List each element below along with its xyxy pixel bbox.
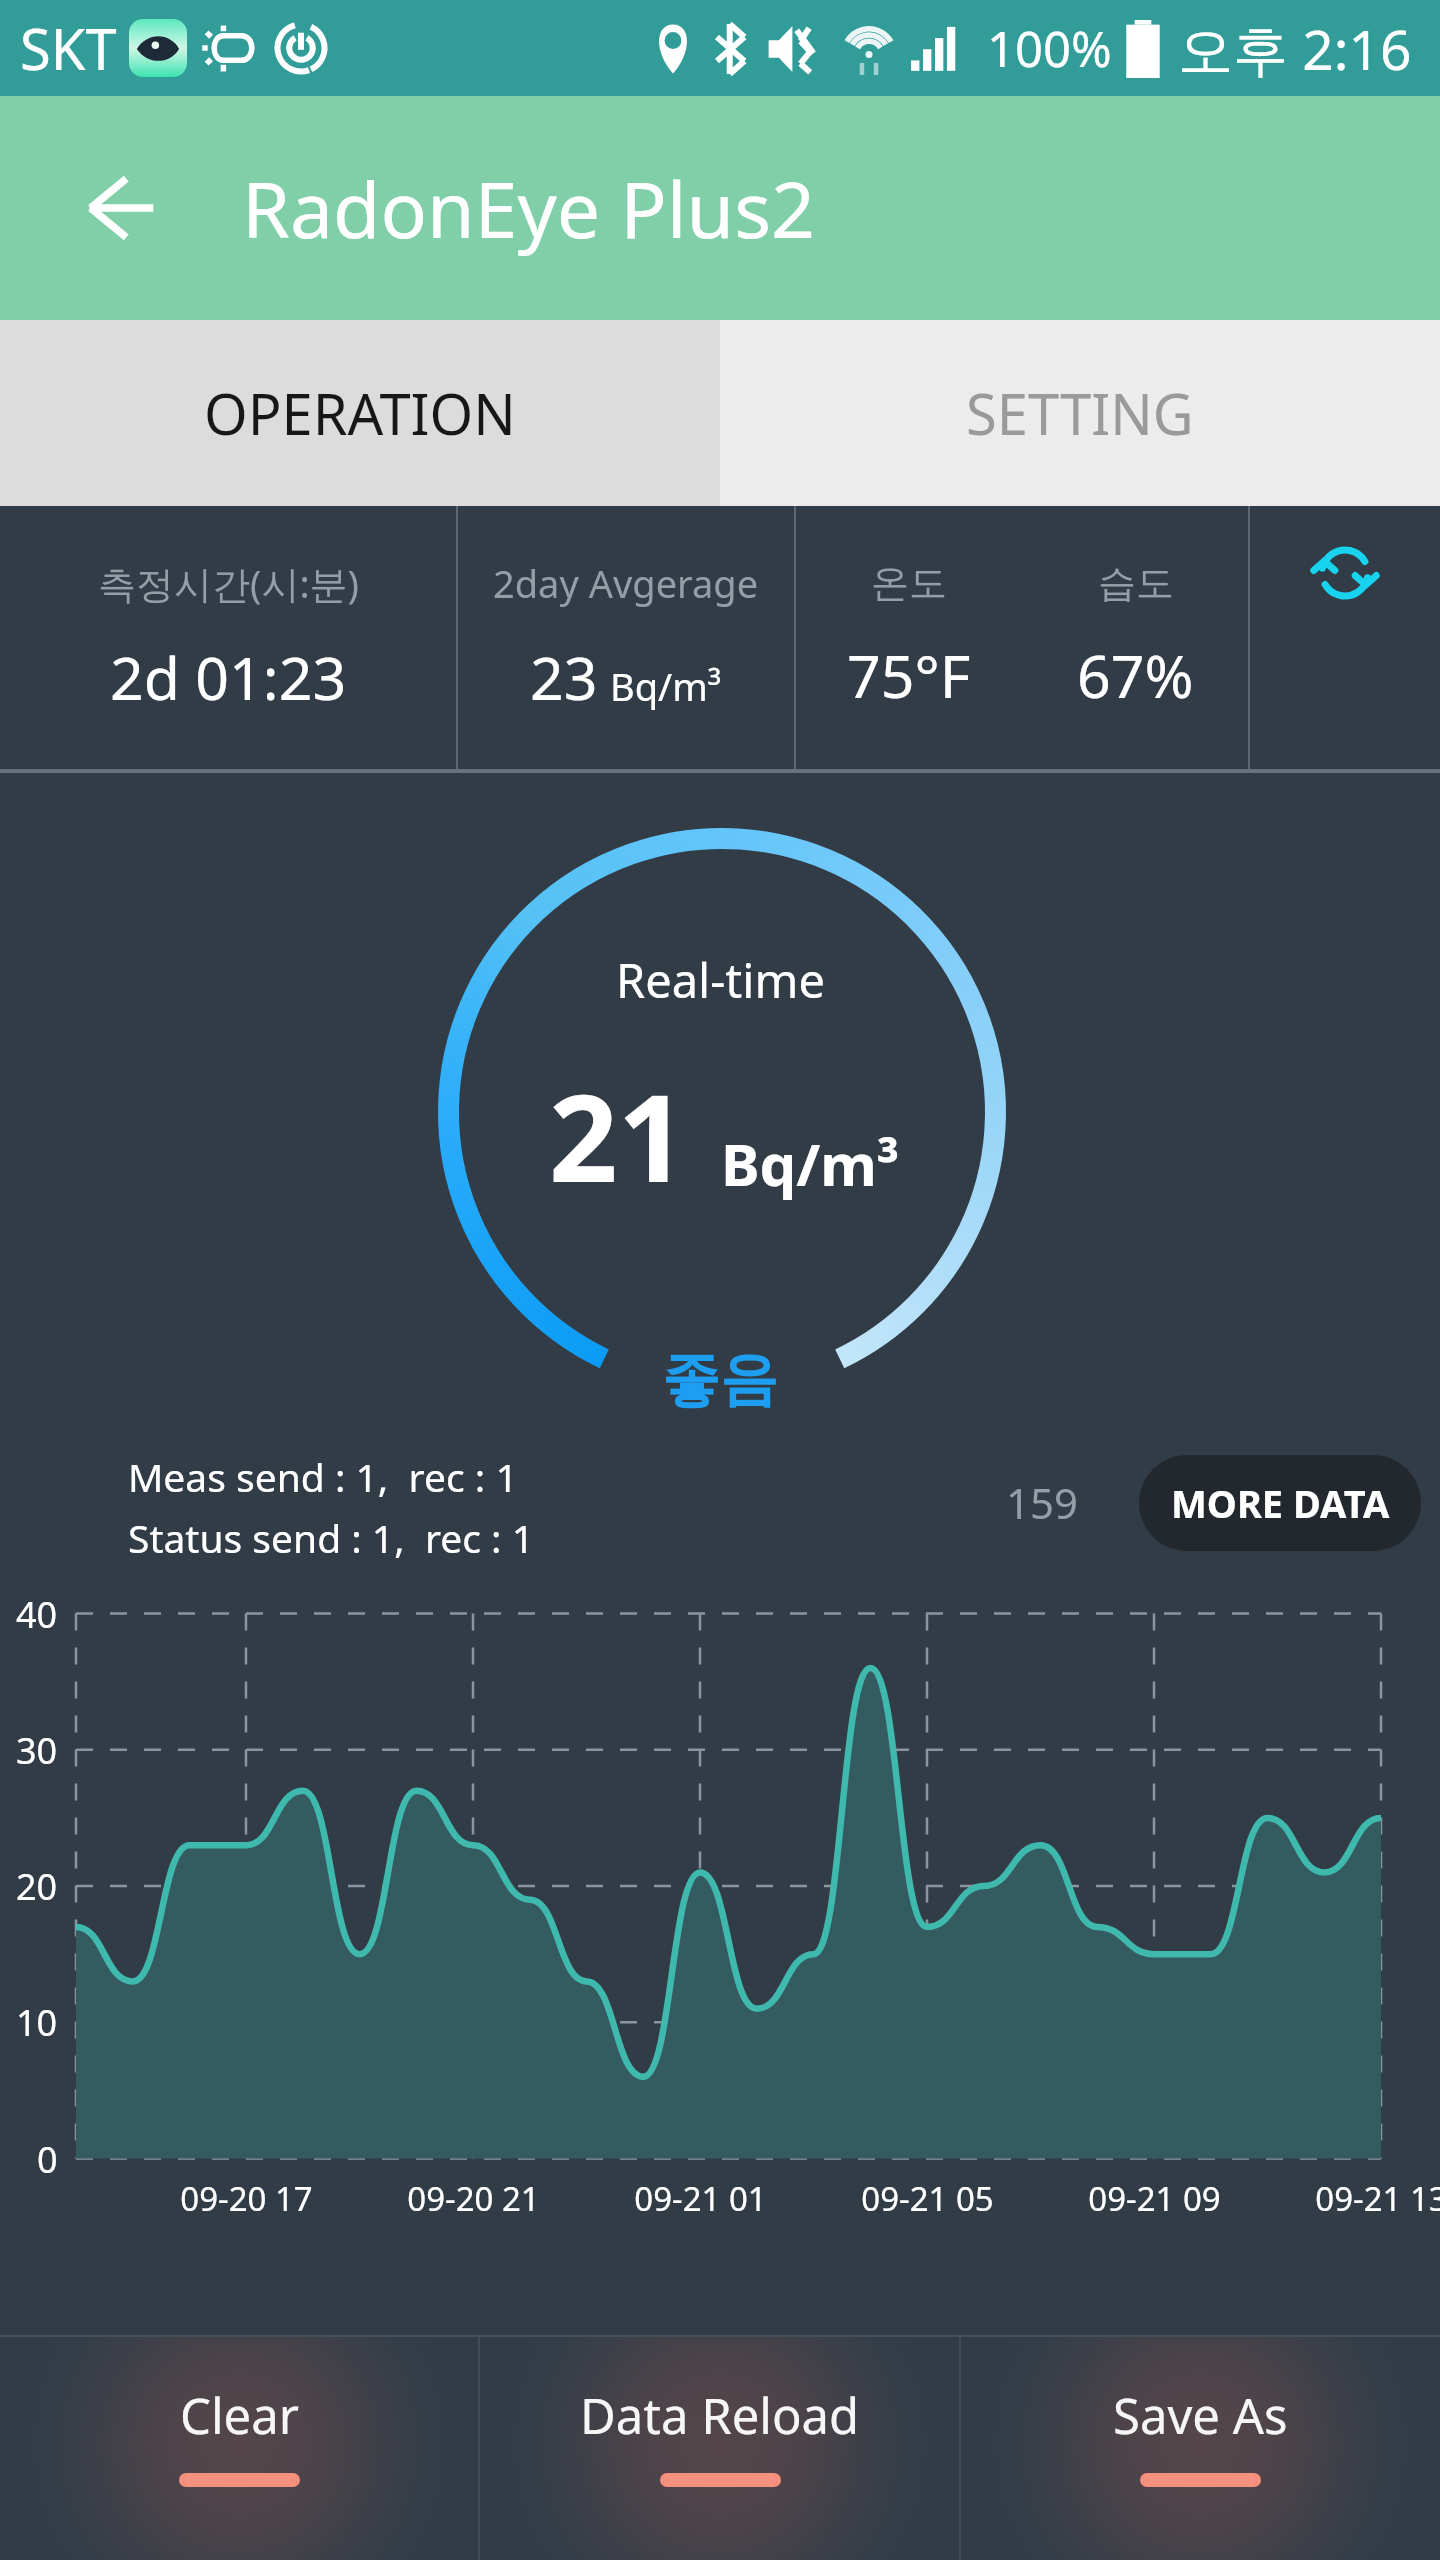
staticText: 159	[1006, 1474, 1079, 1531]
button[interactable]: Clear	[0, 2337, 478, 2560]
staticText: 09-20 21	[407, 2176, 540, 2221]
staticText: 2d 01:23	[110, 637, 347, 717]
staticText: 09-21 01	[634, 2176, 767, 2221]
staticText: 75°F	[847, 635, 971, 715]
staticText: 측정시간(시:분)	[98, 557, 359, 609]
staticText: 20	[16, 1862, 58, 1911]
button[interactable]: Refresh	[1250, 506, 1440, 773]
button[interactable]: MORE DATA	[1139, 1455, 1421, 1551]
button[interactable]: Data Reload	[480, 2337, 959, 2560]
staticText: 23	[530, 637, 598, 717]
staticText: 09-20 17	[180, 2176, 313, 2221]
button[interactable]: Save As	[961, 2337, 1440, 2560]
staticText: 습도	[1098, 559, 1174, 607]
button[interactable]: Back	[0, 96, 208, 320]
staticText: Bq/m³	[721, 1124, 899, 1203]
staticText: 09-21 13	[1315, 2176, 1440, 2221]
staticText: Real-time	[616, 948, 825, 1012]
staticText: RadonEye Plus2	[242, 156, 816, 261]
button[interactable]: OPERATION	[0, 320, 720, 506]
staticText: OPERATION	[204, 375, 516, 451]
staticText: 30	[16, 1726, 58, 1775]
staticText: Meas send : 1, rec : 1	[128, 1450, 518, 1503]
staticText: Clear	[180, 2382, 299, 2449]
staticText: SETTING	[966, 375, 1194, 451]
staticText: 21	[549, 1054, 687, 1217]
staticText: 10	[16, 1998, 58, 2047]
staticText: MORE DATA	[1171, 1477, 1390, 1529]
staticText: 온도	[871, 559, 947, 607]
staticText: 좋음	[662, 1343, 778, 1416]
staticText: 100%	[987, 15, 1112, 82]
staticText: 67%	[1077, 635, 1194, 715]
staticText: 오후 2:16	[1178, 11, 1412, 86]
button[interactable]: SETTING	[720, 320, 1440, 506]
staticText: Save As	[1113, 2382, 1288, 2449]
staticText: Data Reload	[580, 2382, 860, 2449]
staticText: 40	[16, 1590, 58, 1639]
staticText: SKT	[20, 10, 117, 86]
staticText: 09-21 09	[1088, 2176, 1221, 2221]
staticText: 09-21 05	[861, 2176, 994, 2221]
staticText: 0	[37, 2135, 58, 2184]
staticText: Bq/m³	[610, 660, 722, 712]
staticText: Status send : 1, rec : 1	[128, 1511, 534, 1564]
staticText: 2day Avgerage	[493, 557, 759, 609]
